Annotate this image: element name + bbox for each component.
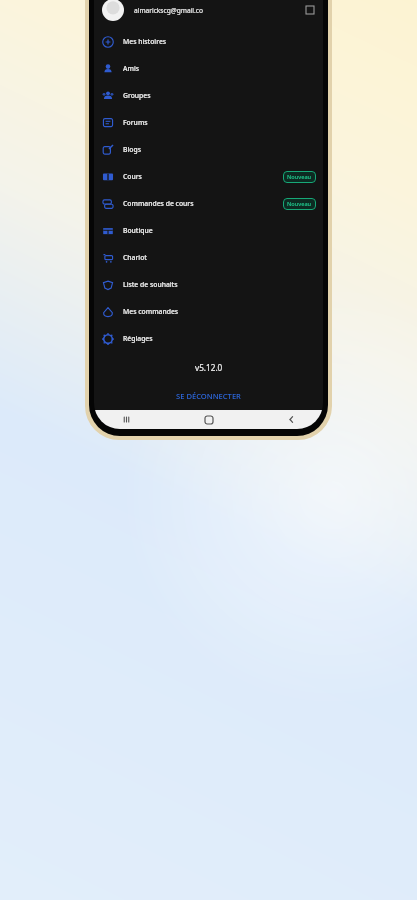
staticText: Cours [123,172,142,181]
button[interactable]: Mes commandes [94,298,323,325]
staticText: v5.12.0 [195,362,223,373]
button[interactable]: Blogs [94,136,323,163]
staticText: Forums [123,118,148,127]
button[interactable]: Commandes de cours [94,190,323,217]
button[interactable]: Cours [94,163,323,190]
button[interactable]: SE DÉCONNECTER [94,387,323,405]
staticText: Réglages [123,334,153,343]
staticText: Mes histoires [123,37,167,46]
staticText: Commandes de cours [123,199,194,208]
staticText: Liste de souhaits [123,280,178,289]
staticText: Chariot [123,253,147,262]
button[interactable]: Back [281,410,301,429]
button[interactable]: almarickscg@gmail.co [94,0,323,23]
staticText: Nouveau [287,173,312,181]
button[interactable]: Chariot [94,244,323,271]
staticText: SE DÉCONNECTER [176,391,241,401]
staticText: Amis [123,64,140,73]
button[interactable]: Boutique [94,217,323,244]
staticText: Groupes [123,91,151,100]
button[interactable]: Liste de souhaits [94,271,323,298]
button[interactable]: Edit profile [303,3,317,17]
staticText: Blogs [123,145,141,154]
button[interactable]: Groupes [94,82,323,109]
staticText: Nouveau [287,200,312,208]
button[interactable]: Amis [94,55,323,82]
button[interactable]: Home [199,410,219,429]
staticText: Mes commandes [123,307,179,316]
button[interactable]: Recent apps [116,410,136,429]
button[interactable]: Forums [94,109,323,136]
button[interactable]: Réglages [94,325,323,352]
staticText: Boutique [123,226,153,235]
button[interactable]: Mes histoires [94,28,323,55]
staticText: almarickscg@gmail.co [134,6,203,15]
